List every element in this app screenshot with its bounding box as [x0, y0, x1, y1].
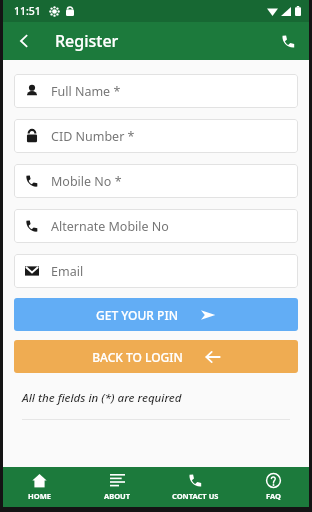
button[interactable]: BACK TO LOGIN — [14, 340, 298, 373]
button[interactable]: FAQ — [234, 467, 312, 507]
staticText: CONTACT US — [172, 491, 219, 501]
staticText: BACK TO LOGIN — [92, 349, 183, 365]
button[interactable]: GET YOUR PIN — [14, 298, 298, 331]
button[interactable]: Email — [14, 254, 298, 288]
staticText: Alternate Mobile No — [51, 218, 169, 235]
staticText: FAQ — [266, 491, 281, 501]
staticText: HOME — [28, 491, 51, 501]
staticText: Email — [51, 263, 84, 280]
staticText: All the fields in (*) are required — [22, 390, 182, 406]
button[interactable]: CONTACT US — [156, 467, 234, 507]
button[interactable]: Alternate Mobile No — [14, 209, 298, 243]
staticText: ABOUT — [104, 491, 131, 501]
staticText: CID Number * — [51, 128, 135, 145]
button[interactable]: Mobile No * — [14, 164, 298, 198]
staticText: Register — [55, 30, 119, 52]
button[interactable]: ABOUT — [78, 467, 156, 507]
button[interactable]: Full Name * — [14, 74, 298, 108]
staticText: Full Name * — [51, 83, 121, 100]
staticText: 11:51 — [14, 4, 41, 18]
button[interactable]: CID Number * — [14, 119, 298, 153]
staticText: Mobile No * — [51, 173, 122, 190]
button[interactable]: Back — [8, 25, 40, 57]
staticText: GET YOUR PIN — [96, 307, 178, 323]
button[interactable]: HOME — [0, 467, 78, 507]
button[interactable]: Call — [272, 25, 304, 57]
